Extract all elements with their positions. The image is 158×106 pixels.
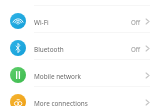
button[interactable]: More connections	[0, 89, 158, 106]
button[interactable]: Bluetooth	[0, 35, 158, 62]
staticText: More connections	[34, 99, 145, 106]
button[interactable]: Wi-Fi	[0, 8, 158, 35]
staticText: Wi-Fi	[34, 18, 131, 27]
staticText: Off	[131, 45, 141, 53]
staticText: Mobile network	[34, 72, 145, 81]
staticText: Bluetooth	[34, 45, 131, 54]
staticText: Off	[131, 18, 141, 26]
button[interactable]: Mobile network	[0, 62, 158, 89]
